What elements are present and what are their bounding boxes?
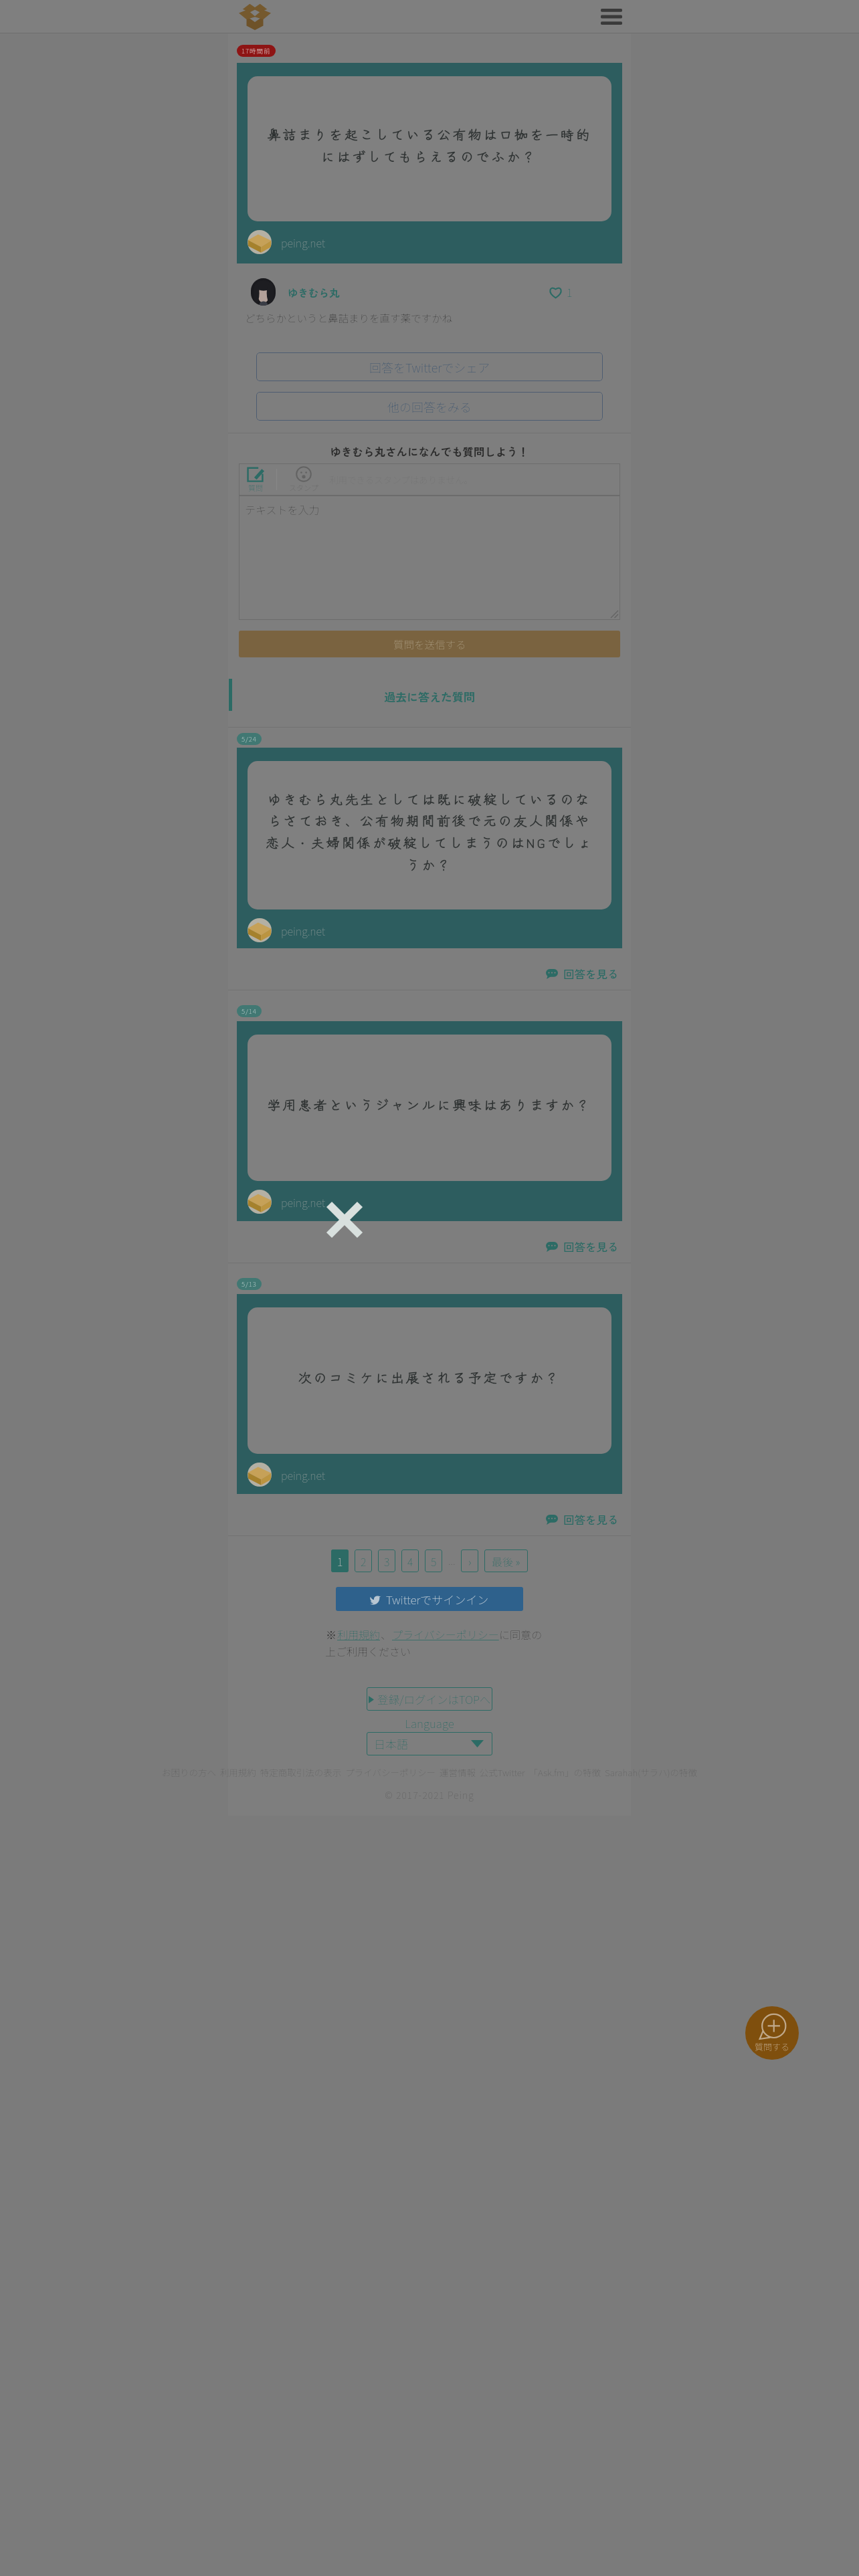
button[interactable]: 回答をTwitterでシェア — [256, 352, 603, 381]
staticText: 4 — [407, 1553, 413, 1569]
button[interactable]: 5 — [425, 1549, 442, 1572]
staticText: に同意の — [499, 1626, 543, 1642]
button[interactable]: 回答を見る — [228, 1506, 631, 1533]
staticText: 質問する — [755, 2040, 790, 2053]
staticText: 学用患者というジャンルに興味はありますか？ — [261, 1095, 598, 1113]
staticText: 利用規約 — [337, 1626, 381, 1642]
staticText: 5/14 — [242, 1006, 257, 1016]
staticText: 質問を送信する — [393, 637, 466, 651]
staticText: 5 — [431, 1553, 437, 1569]
staticText: お困りの方へ 利用規約 特定商取引法の表示 プライバシーポリシー 運営情報 公式… — [0, 1765, 859, 1779]
staticText: 5/13 — [242, 1279, 257, 1289]
staticText: 他の回答をみる — [387, 398, 472, 415]
staticText: 質問 — [248, 482, 263, 493]
staticText: peing.net — [281, 1194, 326, 1210]
staticText: 2 — [361, 1553, 367, 1569]
button[interactable]: 質問を送信する — [239, 631, 620, 657]
staticText: 登録/ログインはTOPへ — [377, 1691, 491, 1707]
staticText: ゆきむら丸先生としては既に破綻しているのならさておき、公有物期間前後で元の友人関… — [261, 789, 598, 874]
staticText: Twitterでサインイン — [386, 1591, 489, 1608]
button[interactable]: Twitterでサインイン — [336, 1587, 523, 1611]
staticText: › — [468, 1553, 472, 1569]
staticText: 1 — [567, 284, 573, 300]
staticText: 17時間前 — [242, 46, 271, 56]
staticText: peing.net — [281, 1467, 326, 1483]
button[interactable]: 他の回答をみる — [256, 392, 603, 421]
staticText: 上ご利用ください — [325, 1643, 411, 1658]
staticText: 次のコミケに出展される予定ですか？ — [261, 1368, 598, 1386]
button[interactable]: › — [461, 1549, 478, 1572]
staticText: ゆきむら丸 — [288, 285, 340, 300]
staticText: どちらかというと鼻詰まりを直す薬ですかね — [245, 310, 453, 325]
staticText: 回答を見る — [563, 966, 619, 982]
staticText: スタンプ — [289, 482, 318, 493]
staticText: 回答を見る — [563, 1239, 619, 1255]
staticText: 鼻詰まりを起こしている公有物は口枷を一時的にはずしてもらえるのでふか？ — [261, 124, 598, 166]
staticText: 3 — [384, 1553, 390, 1569]
staticText: 回答をTwitterでシェア — [369, 358, 490, 376]
button[interactable]: 1 — [331, 1549, 349, 1572]
button[interactable]: 質問する — [745, 2006, 799, 2060]
staticText: 過去に答えた質問 — [228, 688, 631, 705]
button[interactable]: 最後 » — [484, 1549, 528, 1572]
staticText: ※ — [326, 1626, 337, 1642]
staticText: peing.net — [281, 923, 326, 938]
button[interactable]: Menu — [597, 5, 626, 28]
button[interactable]: 回答を見る — [228, 960, 631, 987]
button[interactable]: 2 — [355, 1549, 372, 1572]
button[interactable]: 4 — [401, 1549, 419, 1572]
staticText: 5/24 — [242, 734, 257, 744]
button[interactable]: 回答を見る — [228, 1233, 631, 1260]
staticText: 日本語 — [374, 1735, 408, 1752]
button[interactable]: 登録/ログインはTOPへ — [367, 1687, 492, 1711]
staticText: 最後 » — [492, 1553, 520, 1569]
button[interactable]: 日本語 — [367, 1732, 492, 1755]
staticText: 1 — [337, 1553, 343, 1569]
staticText: Language — [228, 1715, 631, 1731]
staticText: テキストを入力 — [245, 502, 320, 517]
staticText: 、 — [381, 1626, 392, 1642]
staticText: プライバシーポリシー — [392, 1626, 499, 1642]
staticText: peing.net — [281, 235, 326, 250]
staticText: ゆきむら丸さんになんでも質問しよう！ — [228, 443, 631, 459]
button[interactable]: 3 — [378, 1549, 395, 1572]
staticText: 回答を見る — [563, 1511, 619, 1527]
